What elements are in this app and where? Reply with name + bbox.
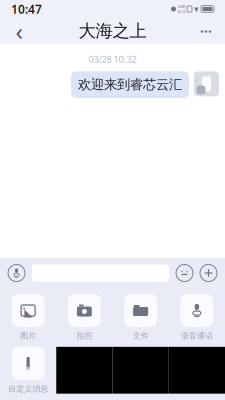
staticText: 自定义消息: [8, 384, 48, 394]
button[interactable]: More options: [191, 18, 221, 44]
staticText: 大海之上: [78, 20, 146, 42]
button[interactable]: 文件: [112, 294, 169, 341]
staticText: ▾: [194, 4, 199, 14]
button[interactable]: 自定义消息: [0, 347, 56, 394]
button[interactable]: More attachments: [200, 264, 217, 281]
staticText: ‹: [15, 15, 22, 47]
staticText: ···: [200, 21, 212, 41]
staticText: 03/28 10:32: [88, 53, 136, 65]
staticText: 10:47: [11, 1, 42, 17]
button[interactable]: Back: [4, 18, 34, 44]
button[interactable]: 拍照: [56, 294, 112, 341]
staticText: 拍照: [76, 331, 92, 341]
button[interactable]: Emoji: [176, 264, 193, 281]
button[interactable]: ◣: [0, 294, 56, 341]
staticText: 5.00 K/S: [178, 4, 185, 14]
button[interactable]: Voice message: [8, 264, 25, 281]
staticText: 文件: [133, 331, 149, 341]
staticText: 欢迎来到睿芯云汇: [78, 76, 182, 93]
staticText: 图片: [20, 331, 36, 341]
staticText: 语音通话: [181, 331, 213, 341]
staticText: ◣: [24, 306, 32, 318]
button[interactable]: 语音通话: [169, 294, 225, 341]
